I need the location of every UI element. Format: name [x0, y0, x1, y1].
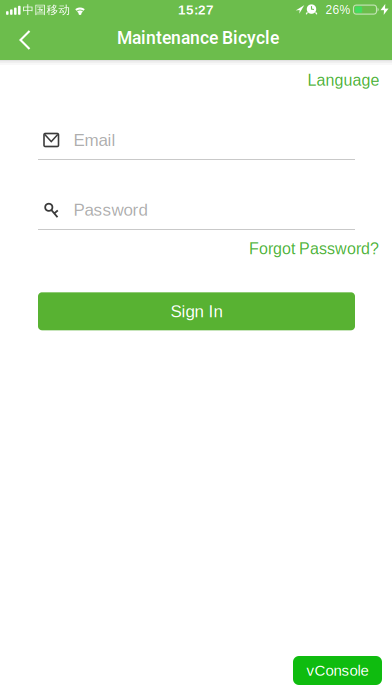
staticText: Language	[307, 71, 379, 89]
staticText: Password	[73, 200, 147, 219]
staticText: 中国移动	[22, 3, 70, 17]
button[interactable]: Language	[307, 71, 379, 89]
staticText: 15:27	[178, 2, 214, 17]
button[interactable]: vConsole	[293, 656, 382, 685]
staticText: Maintenance Bicycle	[117, 28, 279, 48]
staticText: Email	[73, 130, 115, 149]
button[interactable]: Password	[38, 190, 355, 230]
button[interactable]: Back	[8, 21, 42, 59]
staticText: Sign In	[170, 302, 222, 321]
button[interactable]: Email	[38, 120, 355, 160]
staticText: Forgot Password?	[249, 240, 379, 258]
button[interactable]: Forgot Password?	[249, 240, 379, 258]
staticText: 26%	[325, 3, 350, 16]
staticText: vConsole	[306, 662, 368, 679]
button[interactable]: Sign In	[38, 292, 355, 330]
